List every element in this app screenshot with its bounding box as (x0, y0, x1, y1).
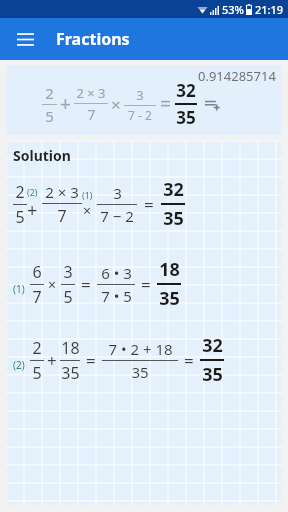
staticText: 2 × 3 (76, 84, 106, 102)
staticText: 7 − 2 (100, 206, 134, 226)
staticText: 2 (15, 181, 25, 203)
staticText: 3 (136, 86, 144, 104)
staticText: = (81, 273, 91, 296)
staticText: × (83, 201, 92, 220)
staticText: = (86, 349, 96, 372)
staticText: 7 - 2 (128, 107, 152, 123)
staticText: 32 (176, 79, 196, 102)
staticText: 3 (63, 261, 73, 283)
staticText: 35 (159, 286, 180, 311)
staticText: Solution (13, 146, 71, 165)
staticText: = (141, 273, 151, 296)
staticText: 0.914285714 (198, 67, 276, 85)
staticText: × (111, 93, 121, 116)
staticText: 5 (45, 106, 54, 126)
staticText: 2 (32, 337, 42, 359)
staticText: Fractions (56, 28, 130, 50)
staticText: 7 (32, 286, 42, 308)
staticText: 3 (113, 183, 122, 203)
staticText: (1) (13, 282, 25, 296)
staticText: 6 • 3 (101, 263, 132, 283)
staticText: 18 (159, 257, 180, 282)
staticText: 32 (202, 333, 223, 358)
staticText: × (48, 275, 57, 294)
staticText: 7 • 2 + 18 (108, 339, 173, 359)
staticText: + (47, 349, 57, 372)
staticText: 35 (163, 206, 184, 231)
staticText: + (27, 198, 38, 223)
staticText: 7 (87, 105, 96, 124)
staticText: 21:19 (255, 2, 284, 17)
staticText: 32 (163, 177, 184, 202)
staticText: 35 (176, 106, 196, 129)
staticText: 53% (222, 2, 244, 17)
staticText: (2) (27, 186, 38, 198)
staticText: 5 (63, 286, 73, 308)
staticText: + (60, 91, 71, 117)
staticText: = (184, 349, 194, 372)
staticText: 35 (61, 362, 80, 384)
staticText: 35 (131, 362, 149, 382)
staticText: 5 (15, 206, 25, 228)
staticText: 18 (61, 337, 80, 359)
staticText: (1) (82, 189, 93, 201)
staticText: 35 (202, 362, 223, 387)
staticText: 7 • 5 (101, 286, 132, 306)
staticText: = (160, 91, 171, 117)
staticText: 5 (32, 362, 42, 384)
button[interactable]: Open navigation menu (8, 22, 42, 56)
button[interactable]: Add to list (202, 94, 222, 114)
staticText: 2 (45, 83, 54, 103)
staticText: (2) (13, 358, 25, 372)
staticText: = (144, 193, 154, 216)
staticText: 6 (32, 261, 42, 283)
staticText: 7 (57, 205, 67, 227)
button[interactable]: 0.914285714 (6, 65, 282, 135)
staticText: 2 × 3 (45, 182, 79, 202)
